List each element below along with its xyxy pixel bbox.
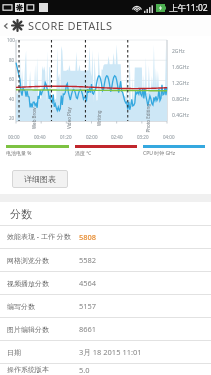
button[interactable]: 图片编辑分数 bbox=[0, 318, 211, 341]
staticText: 04:00 bbox=[163, 134, 175, 140]
staticText: 3月 18 2015 11:01 bbox=[79, 347, 142, 357]
staticText: 图片编辑分数 bbox=[7, 325, 79, 334]
button[interactable]: 编写分数 bbox=[0, 295, 211, 318]
staticText: 20 bbox=[9, 115, 15, 121]
button[interactable]: 操作系统版本 bbox=[0, 364, 211, 375]
staticText: 编写分数 bbox=[7, 302, 79, 311]
button[interactable]: 网格浏览分数 bbox=[0, 249, 211, 272]
button[interactable]: 效能表现 - 工作 分数 bbox=[0, 226, 211, 249]
button[interactable]: 详细图表 bbox=[12, 170, 68, 188]
staticText: 60 bbox=[9, 76, 15, 82]
button[interactable]: Back bbox=[0, 15, 211, 36]
staticText: 02:00 bbox=[86, 134, 98, 140]
staticText: 效能表现 - 工作 分数 bbox=[7, 232, 79, 242]
staticText: 0.8GHz bbox=[172, 96, 189, 103]
staticText: 温度 ℃ bbox=[75, 150, 92, 157]
other: Back bbox=[2, 22, 10, 30]
staticText: 视频播放分数 bbox=[7, 279, 79, 288]
staticText: 100 bbox=[7, 37, 15, 43]
staticText: Photo Editing bbox=[144, 103, 150, 132]
staticText: 网格浏览分数 bbox=[7, 256, 79, 265]
staticText: 01:20 bbox=[60, 134, 72, 140]
staticText: 4564 bbox=[79, 278, 97, 288]
staticText: 5157 bbox=[79, 301, 97, 311]
staticText: 80 bbox=[9, 57, 15, 63]
staticText: 03:20 bbox=[137, 134, 149, 140]
staticText: Video Play bbox=[66, 107, 72, 129]
staticText: 电池电量 % bbox=[6, 150, 32, 157]
button[interactable]: 日期 bbox=[0, 341, 211, 364]
staticText: 1.6GHz bbox=[172, 64, 189, 71]
staticText: Writing bbox=[96, 110, 102, 126]
staticText: 00:40 bbox=[34, 134, 46, 140]
staticText: 1.2GHz bbox=[172, 80, 189, 87]
button[interactable]: 视频播放分数 bbox=[0, 272, 211, 295]
staticText: 0.4GHz bbox=[172, 112, 189, 119]
staticText: 操作系统版本 bbox=[7, 365, 79, 374]
staticText: 5.0 bbox=[79, 365, 90, 375]
staticText: 5582 bbox=[79, 255, 97, 265]
staticText: 2GHz bbox=[172, 48, 185, 55]
staticText: 40 bbox=[9, 96, 15, 102]
staticText: 上午11:02 bbox=[169, 2, 208, 14]
staticText: SCORE DETAILS bbox=[28, 18, 113, 33]
staticText: CPU 时钟 GHz bbox=[143, 150, 176, 157]
staticText: Web Brow bbox=[31, 107, 37, 129]
staticText: 分数 bbox=[10, 207, 32, 221]
staticText: 详细图表 bbox=[24, 174, 56, 184]
staticText: 5808 bbox=[79, 232, 97, 242]
staticText: 8661 bbox=[79, 324, 97, 334]
staticText: 00:00 bbox=[8, 134, 20, 140]
staticText: 日期 bbox=[7, 348, 79, 357]
staticText: 02:40 bbox=[111, 134, 123, 140]
